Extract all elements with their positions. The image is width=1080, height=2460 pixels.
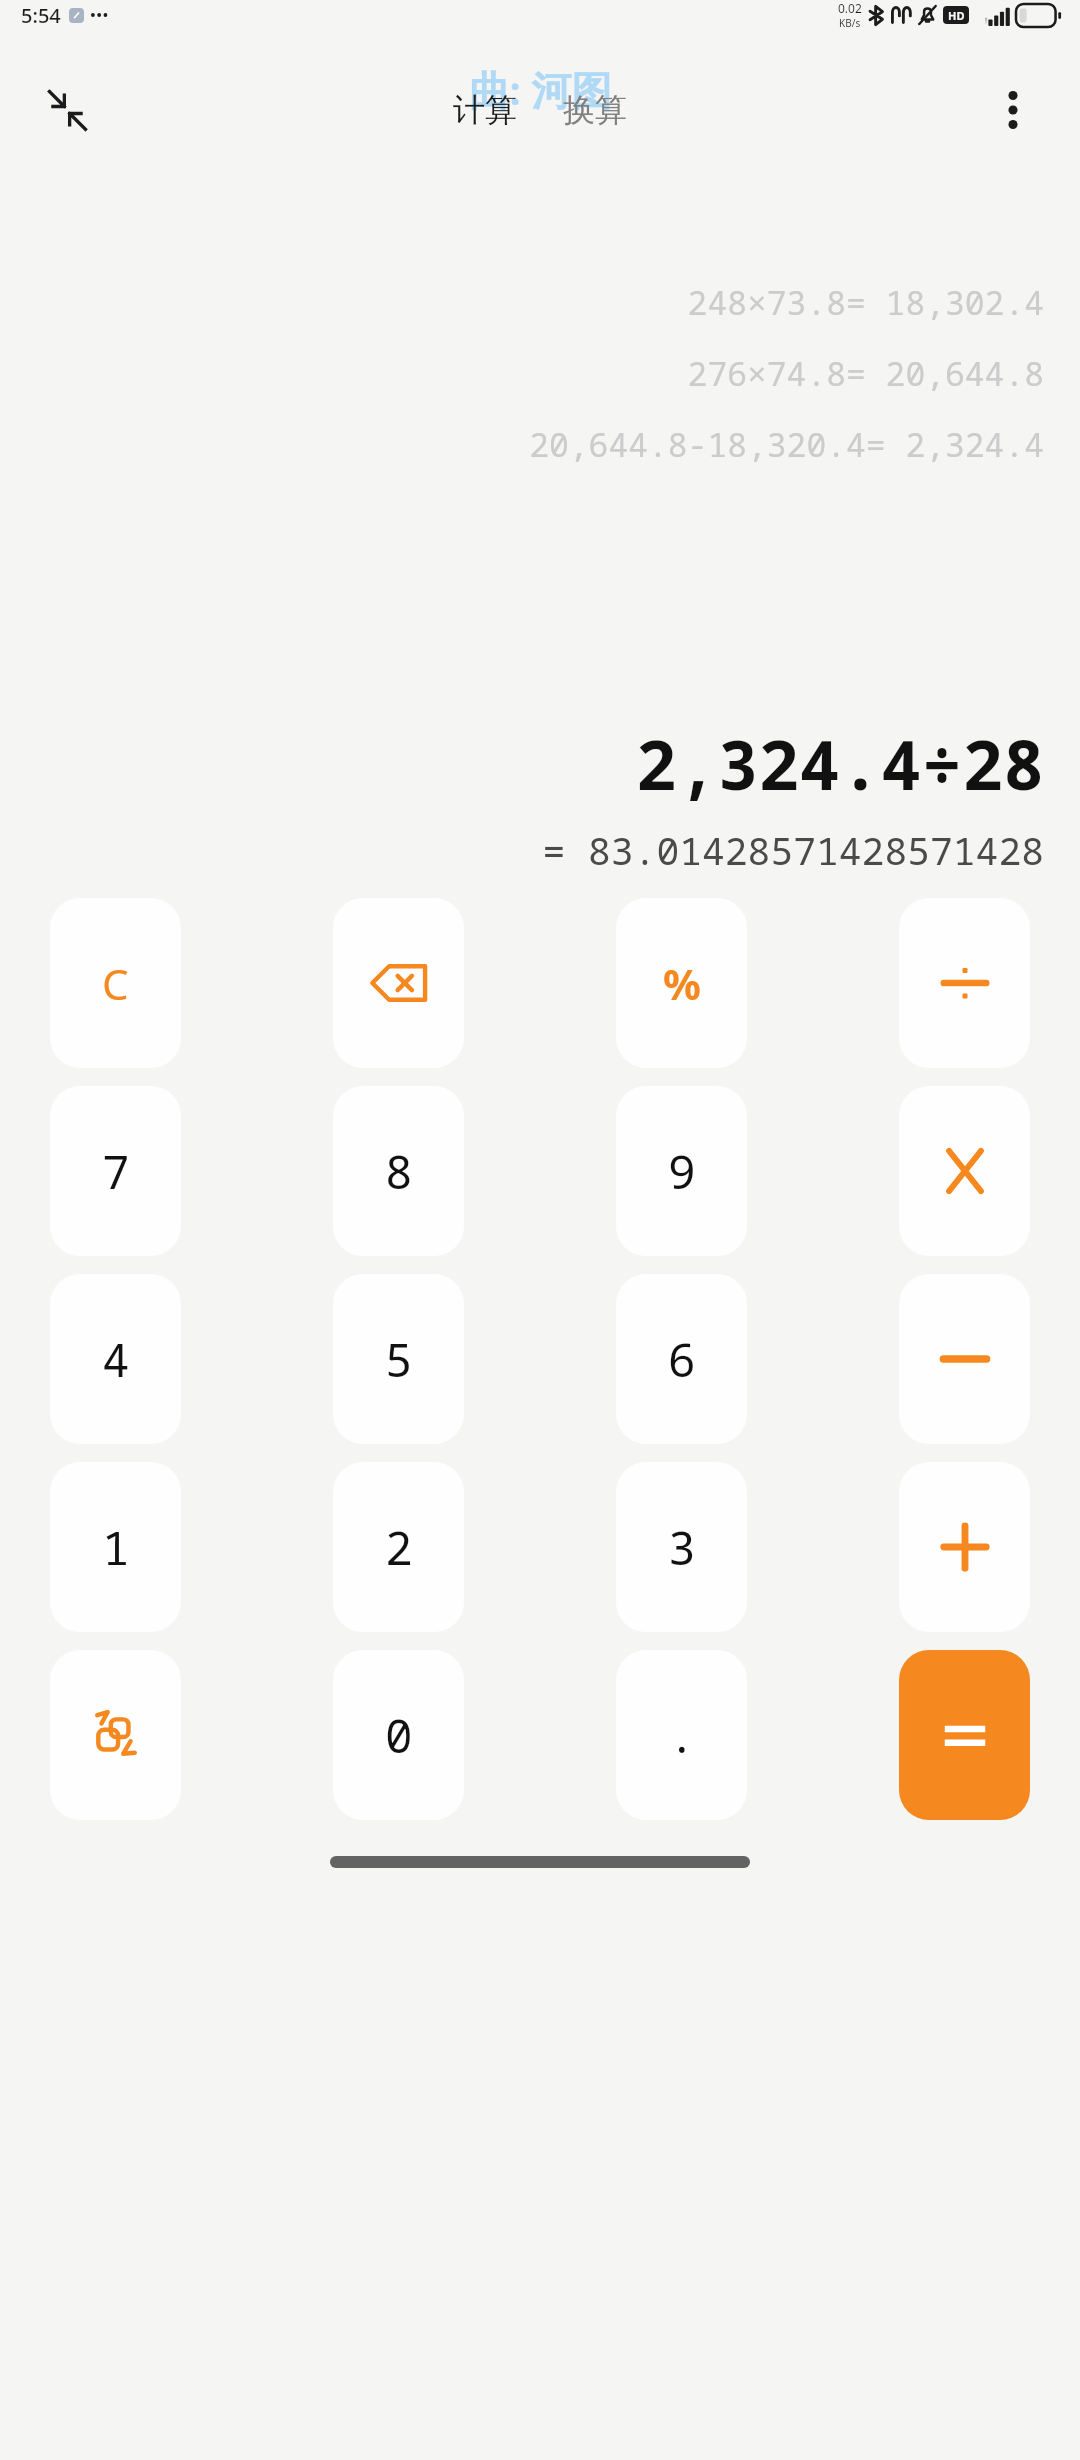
staticText: 9: [668, 1140, 696, 1203]
button[interactable]: 7: [50, 1086, 181, 1256]
button[interactable]: Multiply: [899, 1086, 1030, 1256]
button[interactable]: C: [50, 898, 181, 1068]
staticText: .: [668, 1704, 696, 1767]
button[interactable]: .: [616, 1650, 747, 1820]
button[interactable]: %: [616, 898, 747, 1068]
button[interactable]: Plus: [899, 1462, 1030, 1632]
staticText: 248×73.8= 18,302.4: [687, 280, 1044, 325]
button[interactable]: Divide: [899, 898, 1030, 1068]
button[interactable]: More options: [982, 79, 1044, 141]
button[interactable]: 3: [616, 1462, 747, 1632]
staticText: 4: [102, 1328, 130, 1391]
button[interactable]: 9: [616, 1086, 747, 1256]
button[interactable]: 0: [333, 1650, 464, 1820]
staticText: 0: [385, 1704, 413, 1767]
staticText: HD: [948, 8, 965, 23]
button[interactable]: Equals: [899, 1650, 1030, 1820]
staticText: 5: [385, 1328, 413, 1391]
staticText: 0.02: [838, 0, 862, 16]
staticText: 1: [102, 1516, 130, 1579]
staticText: KB/s: [839, 16, 861, 30]
staticText: 计算: [453, 90, 517, 130]
staticText: 6: [668, 1328, 696, 1391]
staticText: 8: [385, 1140, 413, 1203]
staticText: 3: [668, 1516, 696, 1579]
button[interactable]: Backspace: [333, 898, 464, 1068]
button[interactable]: Scientific mode: [50, 1650, 181, 1820]
staticText: 7: [102, 1140, 130, 1203]
staticText: = 83.01428571428571428: [542, 824, 1044, 876]
button[interactable]: Minus: [899, 1274, 1030, 1444]
button[interactable]: 换算: [553, 84, 637, 136]
staticText: 2: [385, 1516, 413, 1579]
button[interactable]: 6: [616, 1274, 747, 1444]
staticText: 5:54: [21, 2, 61, 29]
button[interactable]: 5: [333, 1274, 464, 1444]
staticText: 换算: [563, 90, 627, 130]
staticText: 20,644.8-18,320.4= 2,324.4: [529, 422, 1044, 467]
button[interactable]: Collapse: [36, 79, 98, 141]
button[interactable]: 计算: [443, 84, 527, 136]
staticText: 2,324.4÷28: [635, 717, 1044, 810]
staticText: 曲: 河图: [469, 62, 612, 117]
staticText: 276×74.8= 20,644.8: [687, 351, 1044, 396]
button[interactable]: 8: [333, 1086, 464, 1256]
staticText: C: [102, 955, 129, 1012]
staticText: %: [663, 955, 701, 1012]
button[interactable]: 4: [50, 1274, 181, 1444]
button[interactable]: 1: [50, 1462, 181, 1632]
button[interactable]: 2: [333, 1462, 464, 1632]
